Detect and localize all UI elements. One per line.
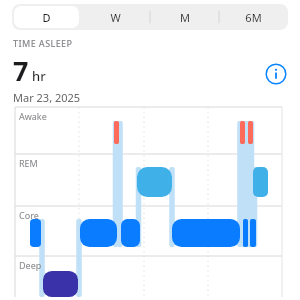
staticText: W	[110, 10, 121, 25]
staticText: hr	[32, 67, 46, 85]
staticText: M	[180, 10, 190, 25]
button[interactable]: 6M	[221, 6, 286, 28]
staticText: Awake	[19, 110, 47, 122]
staticText: Core	[19, 209, 39, 221]
staticText: 6M	[245, 10, 262, 25]
button[interactable]: Info	[265, 63, 287, 85]
staticText: D	[42, 10, 51, 25]
button[interactable]: D	[14, 6, 79, 28]
button[interactable]: Awake	[0, 107, 300, 297]
button[interactable]: W	[83, 6, 148, 28]
staticText: Mar 23, 2025	[13, 90, 81, 105]
staticText: 7	[13, 52, 29, 89]
staticText: Deep	[19, 259, 42, 271]
staticText: REM	[19, 157, 38, 169]
button[interactable]: M	[152, 6, 217, 28]
staticText: TIME ASLEEP	[13, 37, 73, 49]
